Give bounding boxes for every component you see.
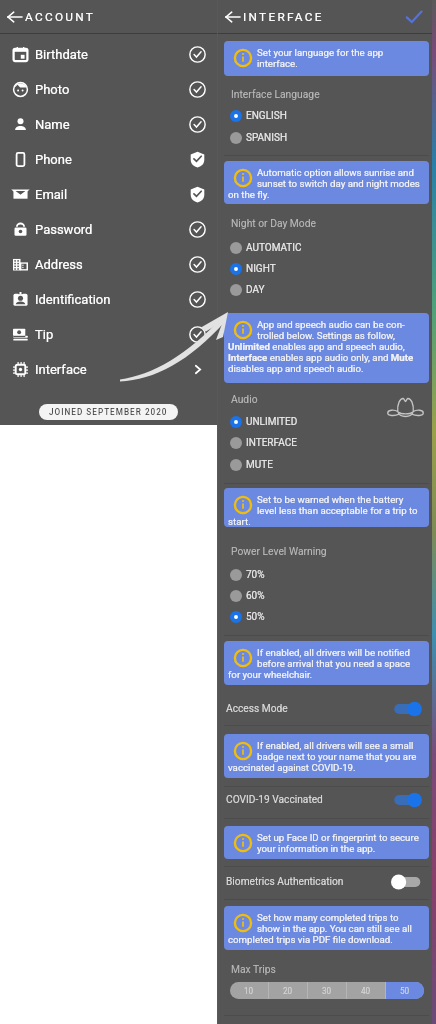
button[interactable]: Save [405,8,423,26]
other: Back [7,9,23,25]
staticText: SPANISH [246,132,288,144]
staticText: Interface [35,362,87,377]
staticText: Interface enables app audio only, and Mu… [228,352,414,363]
staticText: 30 [322,986,332,996]
button[interactable]: Set your language for the app [224,41,429,76]
button[interactable]: DAY [218,279,436,300]
staticText: trolled below. Settings as follow, [257,330,395,341]
staticText: badge next to your name that you are [257,751,417,762]
button[interactable]: AUTOMATIC [218,237,436,258]
staticText: Name [35,117,70,132]
staticText: AUTOMATIC [246,242,302,254]
staticText: sunset to switch day and night modes [257,178,420,189]
staticText: MUTE [246,459,273,471]
button[interactable]: Birthdate [0,37,217,72]
staticText: Set to be warned when the battery [257,494,404,505]
staticText: Night or Day Mode [231,217,316,229]
button[interactable]: INTERFACE [218,432,436,453]
staticText: DAY [246,284,265,296]
staticText: Set your language for the app [257,47,384,58]
button[interactable]: Tip [0,317,217,352]
button[interactable]: Set up Face ID or fingerprint to secure [224,826,429,859]
button[interactable]: JOINED SEPTEMBER 2020 [39,404,178,420]
button[interactable]: Email [0,177,217,212]
button[interactable]: Set how many completed trips to [224,906,429,950]
staticText: for your wheelchair. [228,669,313,680]
button[interactable]: Back [225,9,241,25]
button[interactable]: 60% [218,585,436,606]
staticText: vaccinated against COVID-19. [228,762,356,773]
staticText: UNLIMITED [246,416,298,428]
staticText: show in the app. You can still see all [257,923,412,934]
staticText: 70% [246,569,265,581]
staticText: interface. [257,58,298,69]
staticText: NIGHT [246,263,276,275]
other: Theme [387,397,424,418]
staticText: Automatic option allows sunrise and [257,167,414,178]
button[interactable]: Biometrics Authentication [218,870,436,894]
button[interactable]: Photo [0,72,217,107]
button[interactable]: 50 [386,982,424,999]
button[interactable]: App and speech audio can be con- [224,313,429,383]
button[interactable]: If enabled, all drivers will see a small [224,734,429,778]
button[interactable]: Identification [0,282,217,317]
button[interactable]: 70% [218,564,436,585]
button[interactable]: Password [0,212,217,247]
staticText: INTERFACE [243,10,324,24]
staticText: Email [35,187,68,202]
staticText: 20 [283,986,293,996]
staticText: Password [35,222,93,237]
staticText: Set up Face ID or fingerprint to secure [257,832,419,843]
button[interactable]: Access Mode [218,697,436,721]
button[interactable]: 40 [347,982,385,999]
staticText: Interface Language [231,88,320,100]
staticText: Tip [35,327,54,342]
staticText: on the fly. [228,189,270,200]
button[interactable]: 20 [269,982,307,999]
button[interactable]: NIGHT [218,258,436,279]
staticText: INTERFACE [246,437,297,449]
staticText: Audio [231,393,258,405]
button[interactable]: 10 [230,982,268,999]
staticText: Unlimited enables app and speech audio, [228,341,405,352]
staticText: Max Trips [231,963,276,975]
staticText: 50 [400,986,410,996]
staticText: Birthdate [35,47,88,62]
staticText: 50% [246,611,265,623]
staticText: Phone [35,152,72,167]
button[interactable]: 50% [218,606,436,627]
staticText: Power Level Warning [231,545,327,557]
button[interactable]: Phone [0,142,217,177]
staticText: Access Mode [226,703,288,715]
button[interactable]: Address [0,247,217,282]
staticText: Biometrics Authentication [226,876,344,888]
button[interactable]: UNLIMITED [218,411,436,432]
button[interactable]: MUTE [218,454,436,475]
staticText: completed trips via PDF file download. [228,934,393,945]
staticText: ACCOUNT [25,10,96,24]
staticText: ENGLISH [246,110,287,122]
button[interactable]: Back [0,0,217,33]
staticText: disables app and speech audio. [228,363,364,374]
staticText: JOINED SEPTEMBER 2020 [49,407,168,417]
button[interactable]: ENGLISH [218,105,436,126]
staticText: Address [35,257,83,272]
staticText: Identification [35,292,111,307]
button[interactable]: If enabled, all drivers will be notified [224,641,429,685]
button[interactable]: COVID-19 Vaccinated [218,788,436,812]
staticText: before arrival that you need a space [257,658,411,669]
button[interactable]: Interface [0,352,217,387]
button[interactable]: Name [0,107,217,142]
staticText: If enabled, all drivers will be notified [257,647,410,658]
staticText: COVID-19 Vaccinated [226,794,323,806]
staticText: 10 [244,986,254,996]
staticText: App and speech audio can be con- [257,319,405,330]
staticText: level less than acceptable for a trip to [257,505,418,516]
staticText: your information in the app. [257,843,376,854]
button[interactable]: SPANISH [218,127,436,148]
staticText: start. [228,516,251,527]
button[interactable]: Set to be warned when the battery [224,488,429,527]
button[interactable]: 30 [308,982,346,999]
button[interactable]: Automatic option allows sunrise and [224,161,429,204]
staticText: 60% [246,590,265,602]
